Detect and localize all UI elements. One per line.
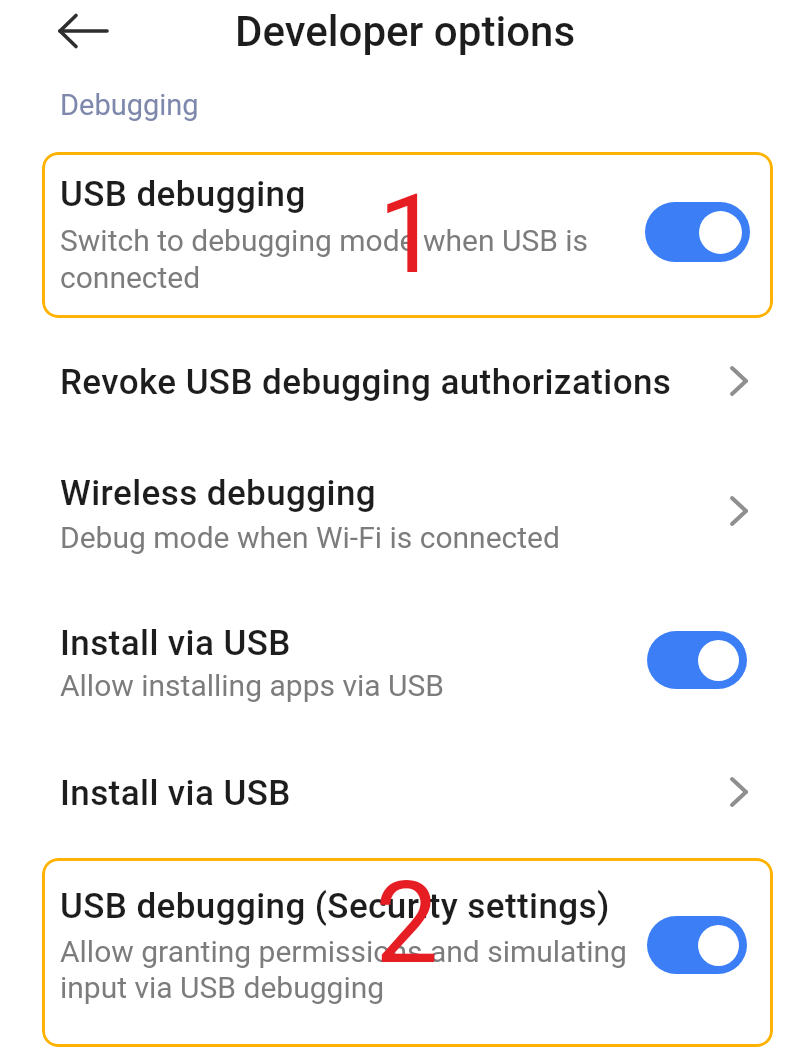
- button[interactable]: USB debugging (Security settings): [42, 858, 773, 1047]
- staticText: Allow installing apps via USB: [60, 668, 444, 703]
- staticText: USB debugging (Security settings): [60, 886, 610, 927]
- button[interactable]: Wireless debugging: [0, 454, 810, 564]
- staticText: 2: [375, 857, 439, 987]
- staticText: Revoke USB debugging authorizations: [60, 362, 672, 403]
- staticText: Switch to debugging mode when USB is con…: [60, 223, 589, 296]
- staticText: Debug mode when Wi-Fi is connected: [60, 520, 560, 555]
- staticText: Wireless debugging: [60, 473, 376, 514]
- button[interactable]: [58, 14, 110, 48]
- button[interactable]: Install via USB: [0, 754, 810, 834]
- staticText: 1: [378, 170, 440, 299]
- staticText: Developer options: [235, 7, 576, 56]
- staticText: USB debugging: [60, 174, 306, 215]
- staticText: Debugging: [60, 88, 199, 122]
- button[interactable]: [645, 202, 750, 262]
- button[interactable]: USB debugging: [42, 152, 773, 318]
- button[interactable]: [647, 916, 747, 974]
- button[interactable]: Install via USB: [0, 604, 810, 714]
- button[interactable]: [647, 631, 747, 689]
- staticText: Install via USB: [60, 773, 291, 814]
- button[interactable]: Revoke USB debugging authorizations: [0, 343, 810, 423]
- staticText: Allow granting permissions and simulatin…: [60, 934, 627, 1005]
- staticText: Install via USB: [60, 623, 291, 664]
